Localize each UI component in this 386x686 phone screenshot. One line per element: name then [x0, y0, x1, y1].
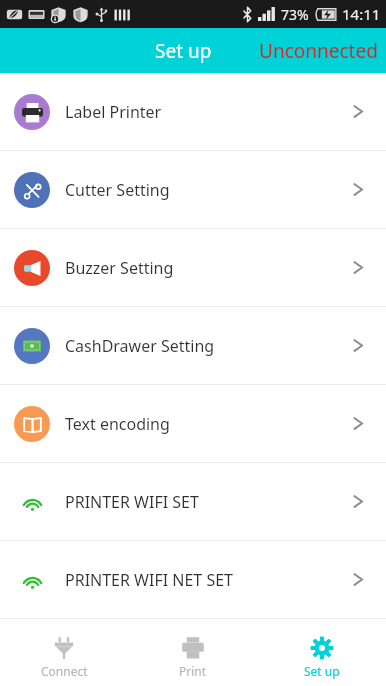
staticText: Text encoding: [65, 413, 170, 435]
button[interactable]: PRINTER WIFI SET: [0, 463, 386, 540]
staticText: PRINTER WIFI NET SET: [65, 569, 234, 591]
button[interactable]: Set up: [257, 628, 386, 686]
button[interactable]: Connect: [0, 628, 128, 686]
staticText: About: [65, 642, 111, 664]
button[interactable]: Unconnected: [251, 32, 386, 70]
button[interactable]: Buzzer Setting: [0, 229, 386, 306]
button[interactable]: Print: [128, 628, 257, 686]
staticText: 73%: [281, 5, 309, 24]
staticText: Cutter Setting: [65, 179, 170, 201]
staticText: Unconnected: [259, 38, 378, 64]
staticText: Buzzer Setting: [65, 257, 174, 279]
staticText: Set up: [304, 663, 340, 679]
button[interactable]: Label Printer: [0, 73, 386, 150]
button[interactable]: PRINTER WIFI NET SET: [0, 541, 386, 618]
staticText: CashDrawer Setting: [65, 335, 215, 357]
staticText: Set up: [155, 38, 212, 64]
button[interactable]: Text encoding: [0, 385, 386, 462]
staticText: Label Printer: [65, 101, 162, 123]
staticText: 14:11: [342, 4, 381, 24]
button[interactable]: Cutter Setting: [0, 151, 386, 228]
button[interactable]: CashDrawer Setting: [0, 307, 386, 384]
staticText: PRINTER WIFI SET: [65, 491, 199, 513]
button[interactable]: About: [0, 619, 386, 686]
staticText: Connect: [41, 663, 88, 679]
staticText: Print: [179, 663, 207, 679]
